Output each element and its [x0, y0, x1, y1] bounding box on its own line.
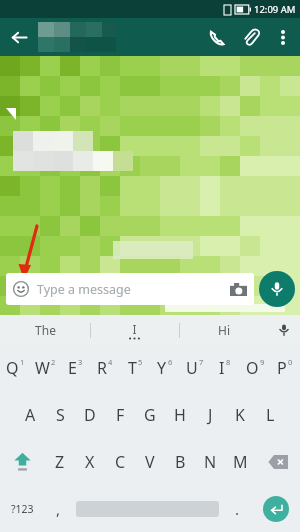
button[interactable]: Voice message	[259, 271, 295, 307]
staticText: 8	[226, 357, 231, 367]
button[interactable]: Shift	[0, 438, 45, 485]
button[interactable]: A	[15, 391, 45, 438]
staticText: 5	[138, 357, 143, 367]
button[interactable]: F	[105, 391, 135, 438]
button[interactable]: Space	[73, 485, 222, 532]
staticText: G	[144, 404, 156, 426]
staticText: M	[233, 451, 248, 473]
other: Camera	[230, 283, 247, 296]
button[interactable]: W	[30, 345, 60, 391]
button[interactable]: I	[90, 315, 179, 345]
button[interactable]: B	[165, 438, 195, 485]
button[interactable]: P	[270, 345, 300, 391]
staticText: U	[186, 357, 198, 379]
staticText: Type a message	[37, 281, 131, 298]
button[interactable]: V	[135, 438, 165, 485]
button[interactable]: I	[210, 345, 240, 391]
staticText: W	[35, 357, 50, 379]
staticText: ,	[56, 499, 61, 519]
staticText: V	[145, 451, 155, 473]
button[interactable]: U	[180, 345, 210, 391]
button[interactable]: E	[60, 345, 90, 391]
button[interactable]: Y	[150, 345, 180, 391]
button[interactable]: Attach	[234, 20, 268, 54]
staticText: B	[175, 451, 186, 473]
button[interactable]: Emoji	[6, 273, 254, 305]
staticText: T	[128, 357, 137, 379]
button[interactable]: Hi	[179, 315, 268, 345]
staticText: P	[277, 357, 287, 379]
button[interactable]: Enter	[252, 485, 300, 532]
button[interactable]: R	[90, 345, 120, 391]
staticText: 4	[108, 357, 113, 367]
button[interactable]: The	[0, 315, 90, 345]
staticText: 0	[288, 357, 293, 367]
button[interactable]: S	[45, 391, 75, 438]
staticText: A	[25, 404, 36, 426]
staticText: C	[115, 451, 126, 473]
button[interactable]: J	[195, 391, 225, 438]
button[interactable]: Voice input	[268, 315, 300, 345]
staticText: O	[246, 357, 259, 379]
staticText: Z	[55, 451, 65, 473]
staticText: 9	[260, 357, 265, 367]
button[interactable]: K	[225, 391, 255, 438]
button[interactable]: Backspace	[255, 438, 300, 485]
staticText: L	[266, 404, 275, 426]
button[interactable]: ,	[44, 485, 73, 532]
staticText: 2	[51, 357, 56, 367]
staticText: J	[208, 404, 213, 426]
staticText: Hi	[218, 322, 230, 338]
staticText: The	[35, 322, 56, 338]
staticText: .	[235, 499, 240, 519]
button[interactable]: .	[222, 485, 252, 532]
staticText: ?123	[11, 502, 34, 516]
button[interactable]: ?123	[0, 485, 44, 532]
button[interactable]: Call	[200, 20, 234, 54]
button[interactable]: N	[195, 438, 225, 485]
button[interactable]: X	[75, 438, 105, 485]
staticText: S	[56, 404, 65, 426]
button[interactable]: More options	[268, 22, 298, 52]
button[interactable]: T	[120, 345, 150, 391]
button[interactable]: D	[75, 391, 105, 438]
button[interactable]: L	[255, 391, 285, 438]
staticText: 7	[199, 357, 204, 367]
button[interactable]: Q	[0, 345, 30, 391]
staticText: R	[97, 357, 107, 379]
button[interactable]: Z	[45, 438, 75, 485]
staticText: I	[132, 321, 137, 337]
staticText: 6	[168, 357, 173, 367]
staticText: H	[174, 404, 186, 426]
staticText: I	[219, 357, 225, 379]
button[interactable]: G	[135, 391, 165, 438]
button[interactable]: M	[225, 438, 255, 485]
other: Emoji	[13, 281, 29, 297]
staticText: Q	[6, 357, 19, 379]
staticText: 12:09 AM	[254, 3, 296, 16]
staticText: N	[204, 451, 217, 473]
staticText: F	[116, 404, 125, 426]
staticText: 3	[78, 357, 83, 367]
button[interactable]: O	[240, 345, 270, 391]
button[interactable]: C	[105, 438, 135, 485]
staticText: 1	[20, 357, 25, 367]
staticText: E	[68, 357, 77, 379]
staticText: K	[235, 404, 245, 426]
staticText: Y	[157, 357, 167, 379]
staticText: D	[84, 404, 96, 426]
button[interactable]: Back	[0, 18, 38, 56]
staticText: X	[85, 451, 95, 473]
button[interactable]: H	[165, 391, 195, 438]
